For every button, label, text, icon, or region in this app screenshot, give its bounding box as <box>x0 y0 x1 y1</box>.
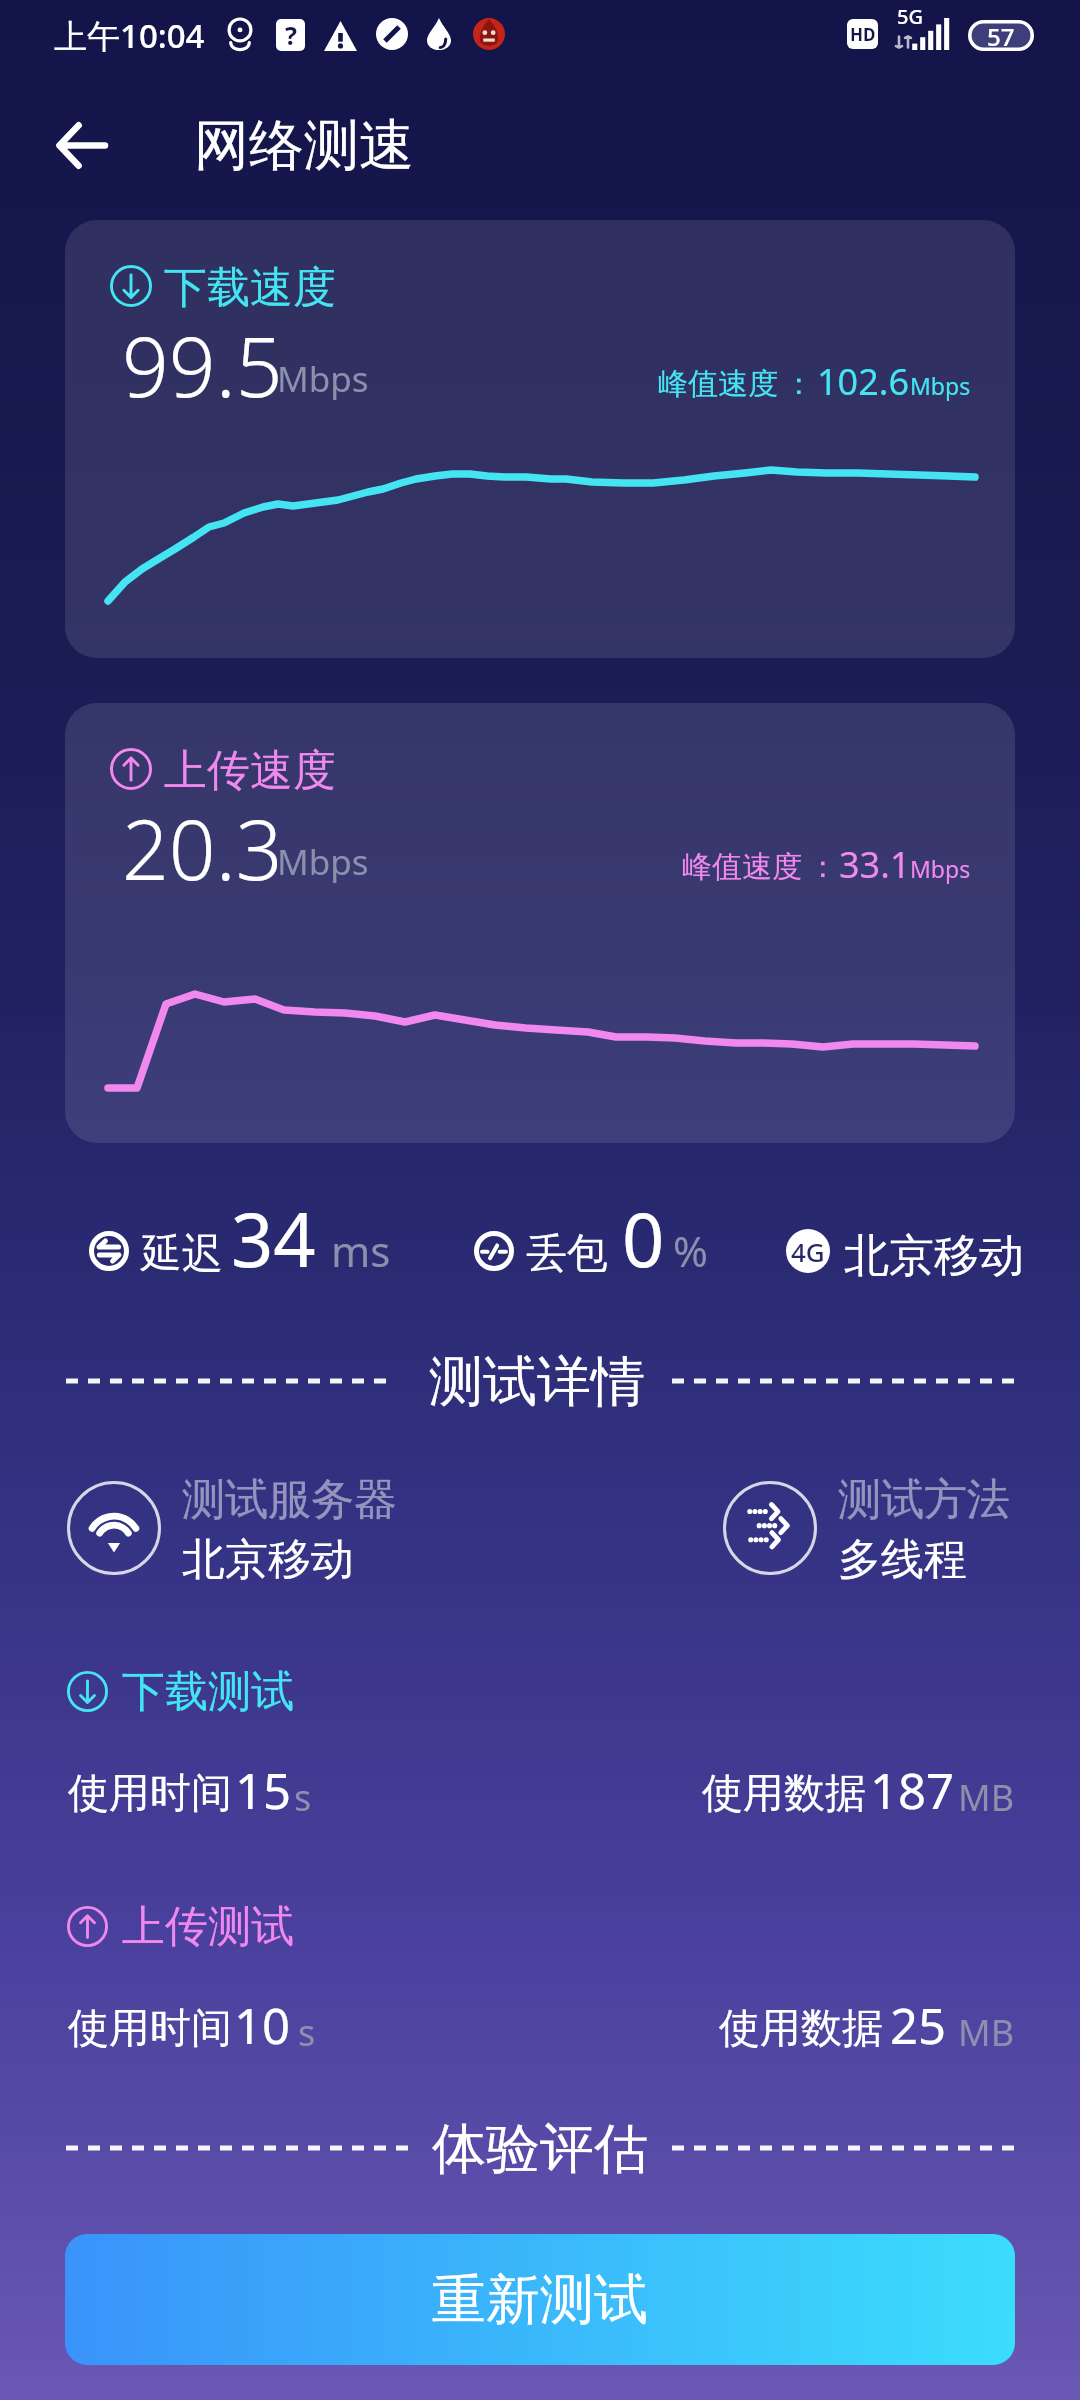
staticText: 33.1 <box>839 840 911 889</box>
staticText: 187 <box>870 1757 955 1824</box>
staticText: 使用时间 <box>68 2003 232 2055</box>
staticText: HD <box>850 23 876 46</box>
staticText: ms <box>331 1222 391 1279</box>
staticText: 上午10:04 <box>54 13 205 58</box>
staticText: 15 <box>235 1757 292 1824</box>
staticText: % <box>673 1222 708 1279</box>
staticText: 10 <box>234 1992 291 2059</box>
staticText: 丢包 <box>526 1228 608 1280</box>
staticText: Mbps <box>910 370 971 401</box>
staticText: ： <box>784 365 814 403</box>
staticText: 20.3 <box>122 792 283 904</box>
staticText: s <box>298 2008 316 2057</box>
staticText: 测试方法 <box>838 1473 1010 1527</box>
staticText: 北京移动 <box>844 1228 1024 1285</box>
staticText: 下载测试 <box>122 1665 294 1719</box>
staticText: 下载速度 <box>164 261 336 315</box>
staticText: 99.5 <box>122 309 283 421</box>
staticText: MB <box>958 2008 1015 2057</box>
staticText: 4G <box>791 1234 825 1269</box>
staticText: 上传测试 <box>122 1900 294 1954</box>
button[interactable]: 重新测试 <box>65 2234 1015 2365</box>
staticText: ? <box>285 19 297 50</box>
staticText: 测试详情 <box>429 1348 645 1416</box>
staticText: 北京移动 <box>182 1533 354 1587</box>
staticText: 多线程 <box>838 1533 967 1587</box>
staticText: 57 <box>987 20 1015 51</box>
staticText: 延迟 <box>141 1228 223 1280</box>
staticText: 25 <box>890 1992 947 2059</box>
staticText: 34 <box>231 1188 316 1289</box>
staticText: 5G <box>897 3 923 30</box>
staticText: 使用数据 <box>702 1768 866 1820</box>
staticText: 峰值速度 <box>682 848 802 886</box>
staticText: 网络测速 <box>194 111 414 180</box>
button[interactable]: Back <box>38 102 124 188</box>
staticText: 使用数据 <box>719 2003 883 2055</box>
staticText: MB <box>958 1773 1015 1822</box>
staticText: 重新测试 <box>432 2266 648 2334</box>
staticText: Mbps <box>910 853 971 884</box>
staticText: 102.6 <box>817 357 910 406</box>
staticText: 0 <box>622 1188 665 1289</box>
staticText: 上传速度 <box>164 744 336 798</box>
staticText: 测试服务器 <box>182 1473 397 1527</box>
staticText: s <box>294 1773 312 1822</box>
staticText: 使用时间 <box>68 1768 232 1820</box>
staticText: 体验评估 <box>432 2115 648 2183</box>
staticText: ： <box>808 848 838 886</box>
staticText: Mbps <box>277 838 369 886</box>
staticText: Mbps <box>277 355 369 403</box>
staticText: 峰值速度 <box>658 365 778 403</box>
